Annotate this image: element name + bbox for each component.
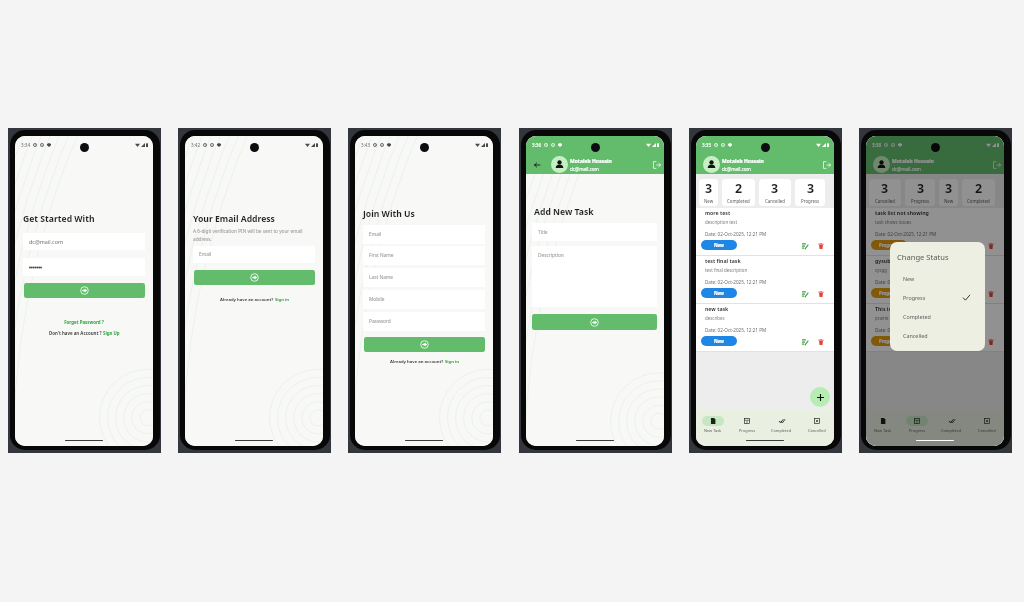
button[interactable]: 3 bbox=[939, 179, 958, 206]
button[interactable] bbox=[23, 258, 145, 276]
button[interactable]: Delete bbox=[816, 241, 825, 250]
button[interactable]: Delete bbox=[816, 289, 825, 298]
button[interactable]: Progress bbox=[871, 288, 907, 298]
button[interactable]: Logout bbox=[821, 159, 832, 170]
button[interactable]: 3 bbox=[699, 179, 718, 206]
staticText: Get Started With bbox=[23, 213, 95, 225]
button[interactable]: Edit status bbox=[800, 241, 809, 250]
button[interactable]: Completed bbox=[764, 416, 799, 433]
button[interactable]: Title bbox=[532, 223, 657, 241]
button[interactable]: Edit status bbox=[800, 289, 809, 298]
button[interactable]: Password bbox=[363, 312, 485, 331]
button[interactable]: 2 bbox=[962, 179, 995, 206]
button[interactable]: 3 bbox=[905, 179, 935, 206]
button[interactable]: New bbox=[890, 269, 985, 288]
button[interactable]: Mobile bbox=[363, 290, 485, 309]
staticText: Cancelled bbox=[808, 428, 826, 433]
staticText: New bbox=[704, 198, 714, 204]
button[interactable]: Delete bbox=[986, 337, 995, 346]
staticText: 3 bbox=[917, 180, 925, 197]
staticText: Last Name bbox=[369, 274, 394, 281]
button[interactable]: Add task bbox=[810, 387, 830, 407]
button[interactable]: Progress bbox=[871, 240, 907, 250]
button[interactable]: New bbox=[701, 288, 737, 298]
button[interactable]: Sign in bbox=[445, 359, 459, 365]
button[interactable]: Logout bbox=[651, 159, 662, 170]
button[interactable]: Description bbox=[532, 246, 657, 307]
staticText: Date: 02-Oct-2025, 12:21 PM bbox=[705, 231, 767, 237]
staticText: description test bbox=[705, 219, 738, 225]
button[interactable]: Progress bbox=[890, 288, 985, 307]
button[interactable]: Progress bbox=[900, 416, 934, 433]
button[interactable]: Completed bbox=[890, 307, 985, 326]
button[interactable]: Back bbox=[532, 160, 542, 170]
staticText: 3:42 bbox=[191, 142, 201, 148]
button[interactable]: Sign Up bbox=[103, 330, 120, 336]
button[interactable]: 2 bbox=[722, 179, 755, 206]
button[interactable]: 3 bbox=[795, 179, 825, 206]
button[interactable]: Edit status bbox=[970, 241, 979, 250]
staticText: Add New Task bbox=[534, 206, 594, 218]
button[interactable]: New bbox=[701, 336, 737, 346]
staticText: Progress bbox=[879, 338, 899, 344]
button[interactable]: Continue bbox=[194, 270, 315, 285]
staticText: A 6-digit verification PIN will be sent … bbox=[193, 228, 306, 243]
staticText: Cancelled bbox=[875, 198, 895, 204]
button[interactable]: Progress bbox=[871, 336, 907, 346]
staticText: 3 bbox=[705, 180, 713, 197]
button[interactable]: Email bbox=[193, 246, 315, 263]
staticText: New bbox=[714, 242, 724, 248]
staticText: 3:38 bbox=[872, 142, 882, 148]
staticText: First Name bbox=[369, 252, 394, 259]
button[interactable]: 3 bbox=[759, 179, 791, 206]
staticText: Cancelled bbox=[765, 198, 785, 204]
button[interactable]: Cancelled bbox=[890, 326, 985, 345]
staticText: Join With Us bbox=[363, 208, 415, 220]
staticText: Progress bbox=[909, 428, 926, 433]
button[interactable]: Forget Password ? bbox=[15, 319, 153, 325]
button[interactable]: Continue bbox=[364, 337, 485, 352]
button[interactable]: Edit status bbox=[800, 337, 809, 346]
staticText: New bbox=[944, 198, 954, 204]
button[interactable]: Delete bbox=[986, 289, 995, 298]
button[interactable]: New bbox=[701, 240, 737, 250]
button[interactable]: Continue bbox=[24, 283, 145, 298]
staticText: 3:34 bbox=[21, 142, 31, 148]
button[interactable]: Sign in bbox=[275, 297, 289, 303]
button[interactable]: Progress bbox=[730, 416, 764, 433]
button[interactable]: Email bbox=[363, 225, 485, 244]
staticText: Date: 02-Oct-2025, 12:21 PM bbox=[705, 327, 767, 333]
staticText: more test bbox=[705, 209, 731, 216]
staticText: Date: 02-Oct-2025, 12:21 PM bbox=[875, 279, 937, 285]
staticText: Mobile bbox=[369, 296, 385, 303]
button[interactable]: Logout bbox=[991, 159, 1002, 170]
button[interactable]: First Name bbox=[363, 246, 485, 265]
staticText: test final task bbox=[705, 257, 741, 264]
button[interactable]: Last Name bbox=[363, 268, 485, 287]
staticText: Motaleb Hossain bbox=[722, 158, 764, 165]
button[interactable]: Delete bbox=[986, 241, 995, 250]
staticText: Title bbox=[538, 229, 548, 236]
button[interactable]: 3 bbox=[869, 179, 901, 206]
staticText: Cancelled bbox=[903, 332, 928, 339]
button[interactable]: Completed bbox=[934, 416, 969, 433]
staticText: task list not showing bbox=[875, 209, 929, 216]
staticText: Already have an account? bbox=[390, 359, 445, 365]
button[interactable]: Cancelled bbox=[969, 416, 1004, 433]
button[interactable]: Delete bbox=[816, 337, 825, 346]
staticText: new task bbox=[705, 305, 729, 312]
staticText: Completed bbox=[967, 198, 990, 204]
staticText: 3:36 bbox=[532, 142, 542, 148]
staticText: dc@mail.com bbox=[722, 166, 751, 172]
staticText: Progress bbox=[879, 290, 899, 296]
button[interactable]: dc@mail.com bbox=[23, 233, 145, 250]
button[interactable]: Cancelled bbox=[799, 416, 834, 433]
staticText: task shows issues bbox=[875, 219, 912, 225]
button[interactable]: Continue bbox=[532, 314, 657, 330]
button[interactable]: New Task bbox=[696, 416, 730, 433]
staticText: Progress bbox=[903, 294, 926, 301]
staticText: dc@mail.com bbox=[570, 166, 599, 172]
button[interactable]: New Task bbox=[866, 416, 900, 433]
